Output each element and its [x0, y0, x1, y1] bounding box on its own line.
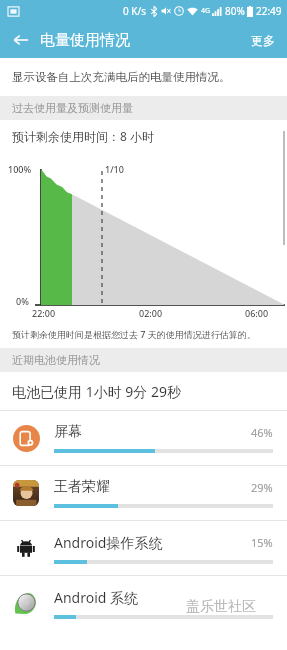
staticText: 近期电池使用情况 [12, 353, 100, 367]
button[interactable]: 屏幕 [0, 411, 287, 465]
staticText: 屏幕 [54, 423, 82, 441]
staticText: 过去使用量及预测使用量 [12, 101, 133, 115]
staticText: 100% [8, 163, 32, 175]
staticText: 80% [225, 4, 245, 18]
staticText: 02:00 [139, 307, 163, 319]
button[interactable]: 返回 [10, 29, 32, 51]
staticText: 电池已使用 1小时 9分 29秒 [12, 382, 181, 401]
staticText: 06:00 [245, 307, 269, 319]
staticText: 0 K/s [123, 4, 147, 18]
staticText: 0% [16, 295, 29, 307]
staticText: 盖乐世社区 [186, 598, 256, 616]
button[interactable]: 更多 [249, 29, 277, 52]
staticText: 15% [251, 535, 273, 550]
staticText: 预计剩余使用时间是根据您过去 7 天的使用情况进行估算的。 [12, 328, 256, 340]
staticText: 预计剩余使用时间：8 小时 [12, 128, 154, 144]
staticText: 22:00 [32, 307, 56, 319]
staticText: 22:49 [256, 4, 282, 18]
staticText: 4G [201, 6, 211, 16]
staticText: Android 系统 [54, 588, 139, 607]
button[interactable]: 王者荣耀 [0, 466, 287, 520]
staticText: 1/10 [105, 163, 124, 175]
staticText: 更多 [251, 33, 275, 48]
staticText: 29% [251, 480, 273, 495]
button[interactable]: Android 系统 [0, 576, 287, 630]
staticText: 电量使用情况 [40, 31, 130, 50]
staticText: 显示设备自上次充满电后的电量使用情况。 [12, 70, 231, 84]
staticText: 王者荣耀 [54, 478, 110, 496]
staticText: 46% [251, 425, 273, 440]
button[interactable]: Android操作系统 [0, 521, 287, 575]
staticText: Android操作系统 [54, 533, 163, 552]
